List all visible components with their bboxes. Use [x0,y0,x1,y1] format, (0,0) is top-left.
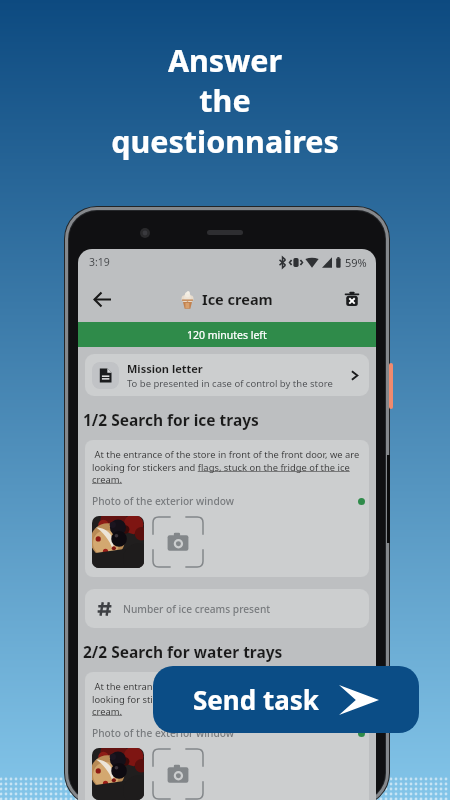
staticText: Photo of the exterior window [92,494,234,508]
button[interactable]: Take photo [152,748,204,800]
staticText: 59% [345,255,367,270]
button[interactable]: Send task [153,666,419,733]
button[interactable]: Mission letter [85,354,369,396]
staticText: 2/2 Search for water trays [83,641,283,662]
staticText: 1/2 Search for ice trays [83,409,259,430]
button[interactable]: Number of ice creams present [85,589,369,628]
staticText: At the entrance of the store in front of… [92,680,365,717]
staticText: At the entrance of the store in front of… [92,448,365,485]
button[interactable]: Take photo [152,516,204,568]
staticText: To be presented in case of control by th… [127,377,333,390]
staticText: Mission letter [127,361,203,376]
staticText: Ice cream [202,289,273,309]
staticText: Photo of the exterior window [92,726,234,740]
button[interactable]: Delete task [336,283,368,315]
staticText: Answer the questionnaires [111,39,339,162]
staticText: Send task [193,682,319,717]
staticText: 3:19 [89,255,110,269]
button[interactable]: Back [86,283,118,315]
staticText: Number of ice creams present [123,602,271,616]
staticText: 120 minutes left [187,328,267,342]
